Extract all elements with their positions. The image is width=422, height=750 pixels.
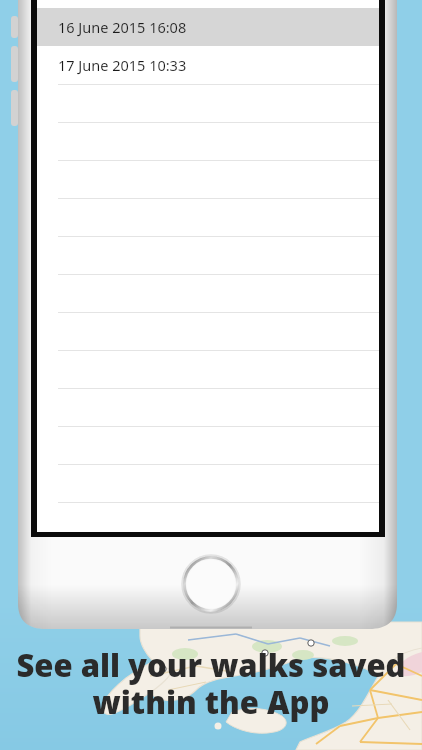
button[interactable]: Home <box>184 557 238 611</box>
staticText: 17 June 2015 10:33 <box>58 55 187 75</box>
staticText: See all your walks saved within the App <box>16 644 406 723</box>
button[interactable]: 17 June 2015 10:33 <box>37 46 379 84</box>
button[interactable]: 16 June 2015 16:08 <box>37 8 379 46</box>
staticText: 16 June 2015 16:08 <box>58 17 187 37</box>
